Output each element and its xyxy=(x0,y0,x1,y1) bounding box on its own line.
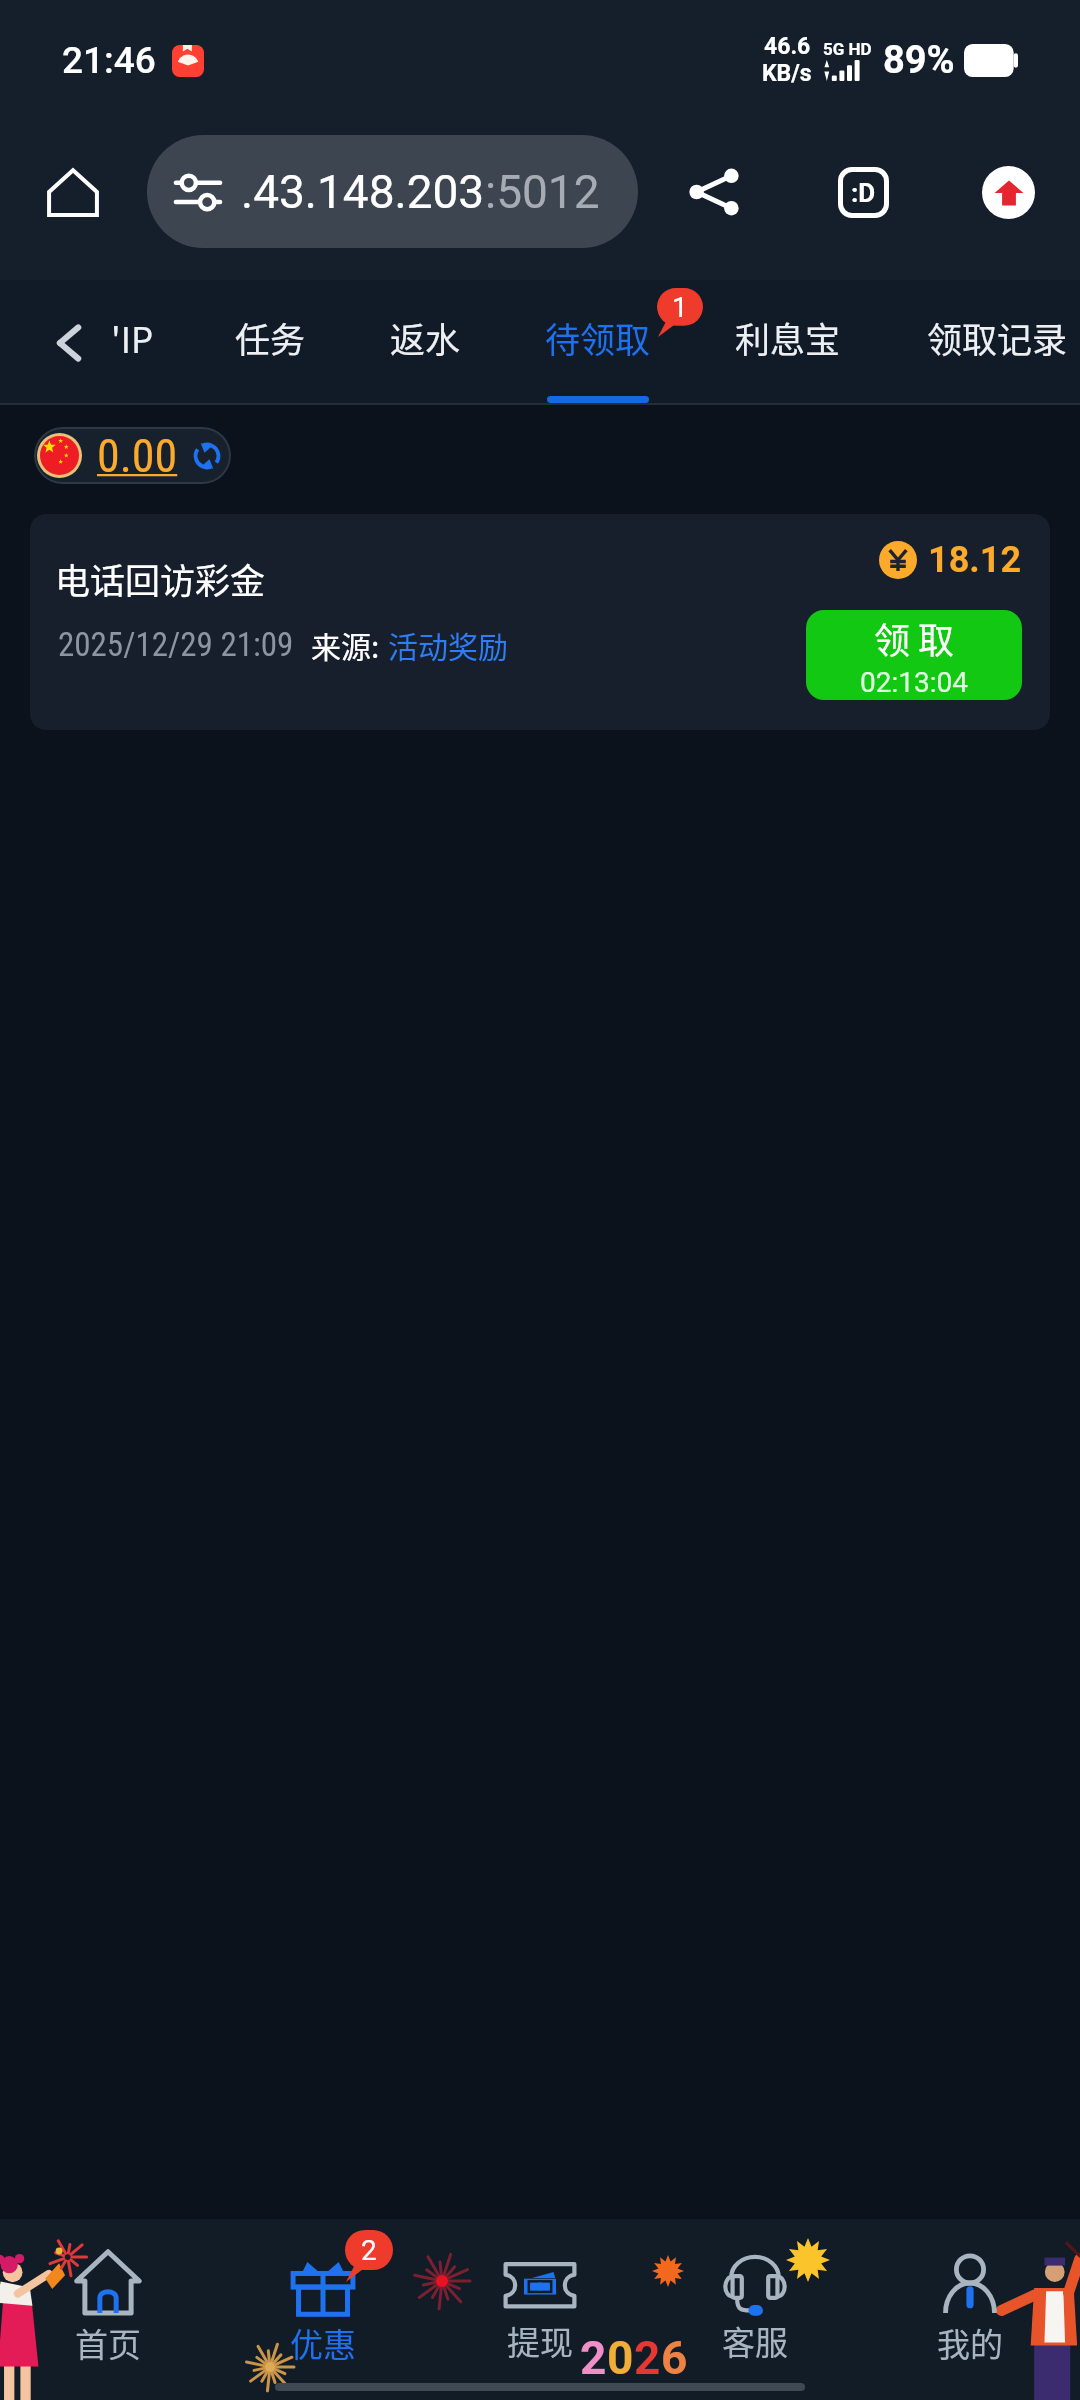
staticText: 来源: xyxy=(311,623,380,666)
staticText: 电话回访彩金 xyxy=(55,553,266,604)
staticText: .43.148.203 xyxy=(241,165,485,219)
staticText: 0.00 xyxy=(97,429,178,483)
staticText: :D xyxy=(851,178,876,208)
button[interactable]: 返水 xyxy=(350,280,500,405)
staticText: 利息宝 xyxy=(735,312,841,363)
staticText: 6 xyxy=(661,2331,688,2385)
staticText: 46.6 xyxy=(764,33,811,60)
staticText: 21:46 xyxy=(62,39,156,82)
button[interactable]: 提现 xyxy=(465,2249,615,2365)
button[interactable]: 领取记录 xyxy=(914,280,1080,405)
staticText: 5G HD xyxy=(823,39,872,59)
staticText: KB/s xyxy=(762,60,812,87)
button[interactable]: 客服 xyxy=(680,2249,830,2365)
staticText: 2 xyxy=(634,2331,661,2385)
button[interactable]: Home xyxy=(33,152,113,232)
staticText: :5012 xyxy=(485,165,600,219)
button[interactable]: 电话回访彩金 xyxy=(30,514,1050,730)
button[interactable]: 首页 xyxy=(33,2249,183,2367)
staticText: 2025/12/29 21:09 xyxy=(58,625,294,664)
button[interactable]: 任务 xyxy=(201,280,339,405)
staticText: 18.12 xyxy=(928,539,1022,581)
staticText: 2 xyxy=(361,2234,377,2267)
button[interactable]: 0.00 xyxy=(37,427,231,484)
button[interactable]: 领 取 xyxy=(806,610,1022,700)
button[interactable]: 'IP xyxy=(67,280,197,405)
staticText: 0 xyxy=(607,2331,634,2385)
staticText: 我的 xyxy=(937,2319,1003,2367)
staticText: 客服 xyxy=(722,2317,788,2365)
staticText: 活动奖励 xyxy=(388,623,508,666)
button[interactable]: Tabs xyxy=(821,150,905,234)
button[interactable]: 我的 xyxy=(895,2249,1045,2367)
staticText: 优惠 xyxy=(290,2319,356,2367)
button[interactable]: Back xyxy=(24,280,116,405)
button[interactable]: Share xyxy=(672,150,756,234)
button[interactable]: 利息宝 xyxy=(703,280,873,405)
staticText: 'IP xyxy=(111,312,154,363)
staticText: 领取记录 xyxy=(927,312,1068,363)
staticText: 提现 xyxy=(507,2317,573,2365)
staticText: 89% xyxy=(883,38,955,83)
staticText: 待领取 xyxy=(545,312,651,363)
staticText: 返水 xyxy=(390,312,461,363)
staticText: 首页 xyxy=(75,2319,141,2367)
button[interactable]: .43.148.203 xyxy=(147,135,638,248)
button[interactable]: 待领取 xyxy=(514,280,682,405)
staticText: 2 xyxy=(580,2331,607,2385)
button[interactable]: Scroll to top xyxy=(966,150,1050,234)
staticText: 领 取 xyxy=(874,612,955,664)
staticText: 1 xyxy=(672,291,688,324)
staticText: 02:13:04 xyxy=(860,666,968,699)
button[interactable]: 优惠 xyxy=(248,2249,398,2367)
staticText: 任务 xyxy=(235,312,306,363)
